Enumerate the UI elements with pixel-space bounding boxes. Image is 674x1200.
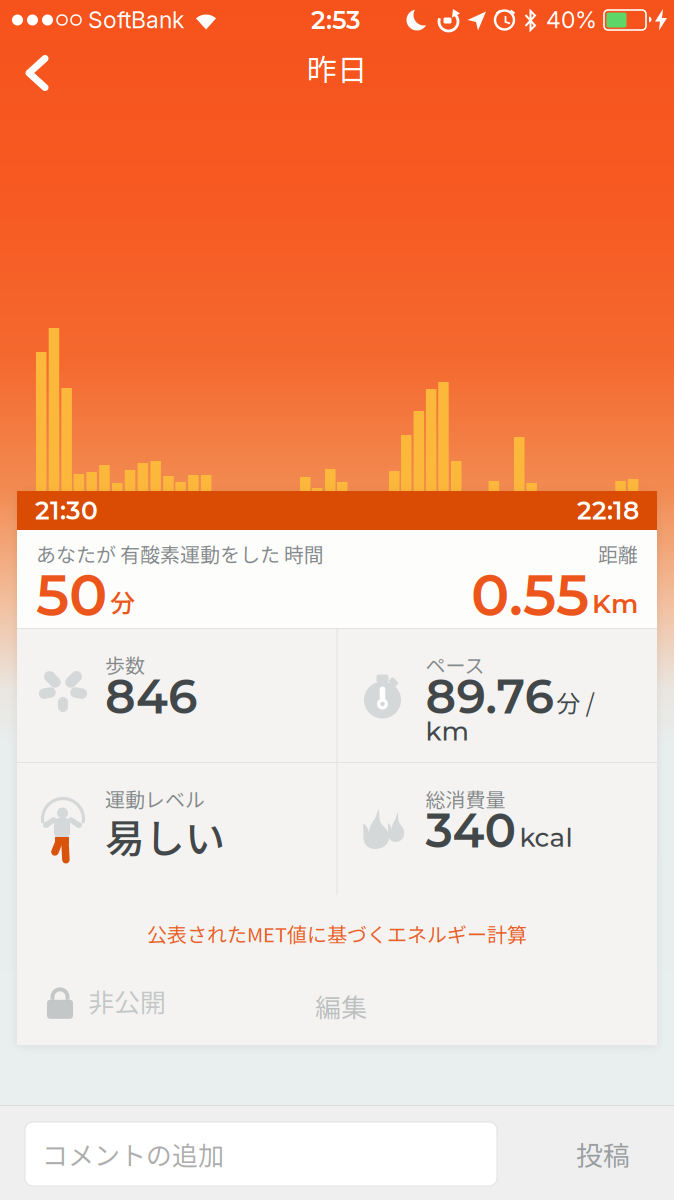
staticText: Km [592, 588, 638, 619]
staticText: 40% [546, 6, 597, 34]
staticText: SoftBank [88, 6, 184, 34]
staticText: 編集 [315, 987, 367, 1025]
button[interactable]: 非公開 [17, 982, 166, 1020]
staticText: コメントの追加 [42, 1135, 224, 1173]
staticText: 89.76 [425, 668, 553, 725]
staticText: 22:18 [577, 495, 639, 526]
staticText: 0.55 [471, 560, 589, 629]
staticText: 非公開 [88, 982, 166, 1020]
staticText: 公表されたMET値に基づくエネルギー計算 [147, 919, 527, 948]
staticText: 距離 [598, 539, 638, 568]
button[interactable]: 投稿 [576, 1134, 674, 1174]
staticText: 2:53 [311, 5, 361, 35]
staticText: あなたが 有酸素運動をした 時間 [36, 539, 324, 568]
staticText: 846 [105, 668, 197, 725]
staticText: 易しい [105, 807, 225, 865]
button[interactable]: Back [0, 50, 50, 99]
staticText: 投稿 [576, 1134, 630, 1174]
staticText: 50 [36, 560, 107, 629]
button[interactable]: 編集 [315, 895, 367, 1025]
button[interactable]: 公表されたMET値に基づくエネルギー計算 [147, 895, 527, 948]
staticText: km [425, 715, 468, 747]
staticText: 総消費量 [425, 784, 505, 813]
staticText: 昨日 [307, 46, 367, 90]
staticText: 分 / [556, 684, 594, 719]
staticText: 分 [110, 583, 135, 619]
staticText: 21:30 [35, 495, 98, 526]
staticText: kcal [519, 822, 572, 853]
staticText: 歩数 [105, 650, 145, 679]
button[interactable]: コメントの追加 [25, 1122, 497, 1186]
staticText: ペース [425, 650, 484, 679]
staticText: 340 [425, 802, 516, 859]
staticText: 運動レベル [105, 784, 205, 813]
